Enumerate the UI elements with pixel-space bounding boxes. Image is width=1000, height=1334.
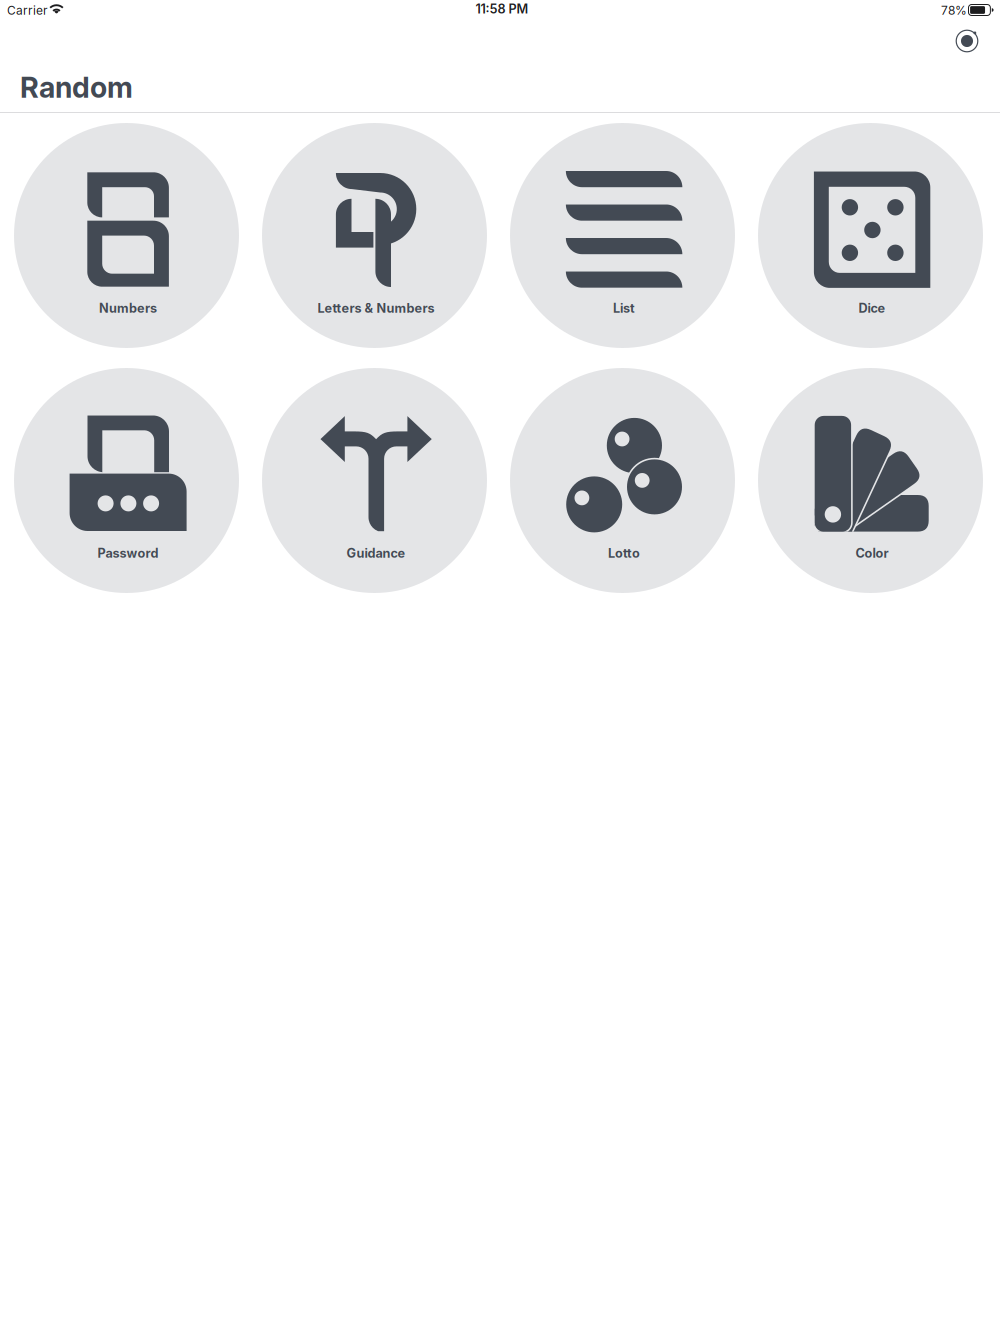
- button[interactable]: Dice: [758, 123, 983, 348]
- button[interactable]: Color: [758, 368, 983, 593]
- button[interactable]: Guidance: [262, 368, 487, 593]
- staticText: 78%: [941, 3, 967, 17]
- staticText: Letters & Numbers: [318, 300, 435, 316]
- button[interactable]: Lotto: [510, 368, 735, 593]
- button[interactable]: Generate: [944, 18, 990, 64]
- staticText: Carrier: [7, 3, 48, 17]
- staticText: Random: [20, 70, 133, 105]
- button[interactable]: Password: [14, 368, 239, 593]
- staticText: Dice: [859, 300, 886, 316]
- staticText: List: [613, 300, 635, 316]
- staticText: 11:58 PM: [475, 1, 528, 17]
- button[interactable]: Letters & Numbers: [262, 123, 487, 348]
- button[interactable]: Numbers: [14, 123, 239, 348]
- button[interactable]: List: [510, 123, 735, 348]
- staticText: Lotto: [608, 545, 640, 561]
- staticText: Color: [856, 545, 889, 561]
- staticText: Guidance: [347, 545, 406, 561]
- staticText: Password: [98, 545, 159, 561]
- staticText: Numbers: [99, 300, 157, 316]
